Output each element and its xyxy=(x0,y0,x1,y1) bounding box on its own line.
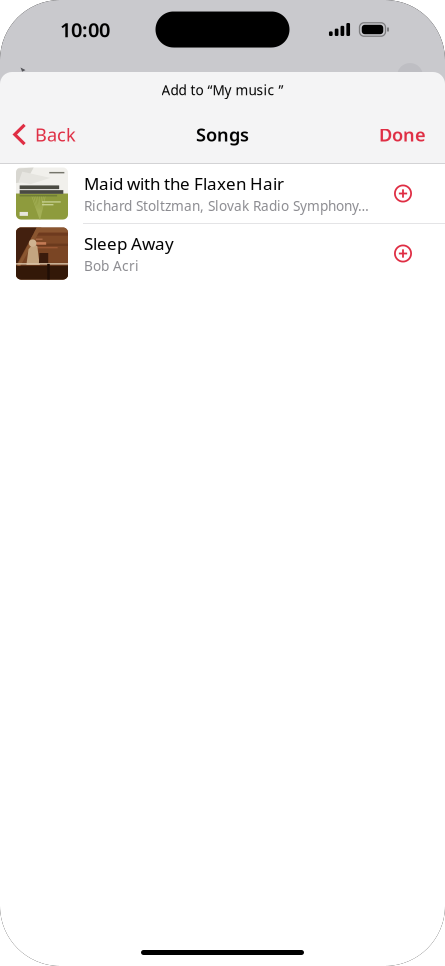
button[interactable]: Sleep Away xyxy=(0,224,445,283)
staticText: Back xyxy=(35,122,76,147)
button[interactable]: Maid with the Flaxen Hair xyxy=(0,164,445,223)
staticText: Bob Acri xyxy=(84,257,139,275)
button[interactable]: Add Maid with the Flaxen Hair xyxy=(386,176,420,210)
staticText: Done xyxy=(379,122,426,147)
staticText: Richard Stoltzman, Slovak Radio Symphony… xyxy=(84,197,369,215)
staticText: Maid with the Flaxen Hair xyxy=(84,172,284,195)
staticText: Songs xyxy=(196,122,249,147)
staticText: 10:00 xyxy=(60,16,110,43)
staticText: Add to “My music ” xyxy=(161,81,283,99)
staticText: Sleep Away xyxy=(84,232,174,255)
button[interactable]: Done xyxy=(365,112,445,156)
button[interactable]: Back xyxy=(0,112,86,156)
button[interactable]: Add Sleep Away xyxy=(386,236,420,270)
